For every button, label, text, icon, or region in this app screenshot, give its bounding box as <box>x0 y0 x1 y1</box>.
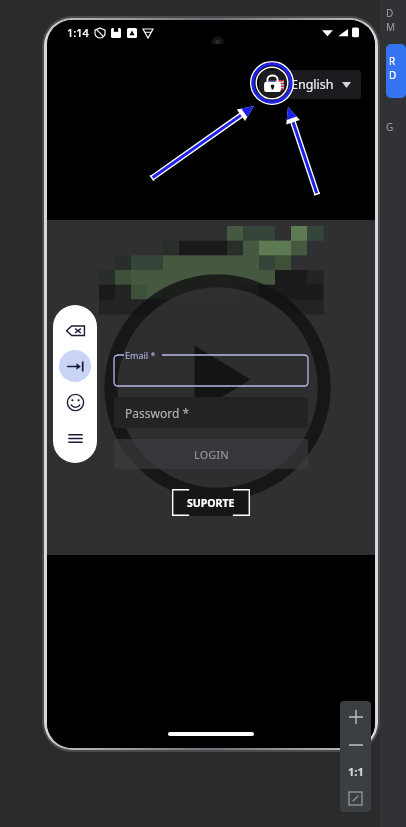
staticText: D <box>386 6 394 20</box>
button[interactable]: Zoom in <box>340 701 371 732</box>
staticText: 1:14 <box>67 25 89 40</box>
staticText: English <box>291 76 334 93</box>
button[interactable]: Password * <box>114 397 308 428</box>
button[interactable]: Fit to screen <box>340 784 371 812</box>
staticText: D <box>389 68 397 82</box>
button[interactable]: Emoji <box>59 386 91 418</box>
button[interactable]: Unlock <box>255 66 289 100</box>
staticText: 1:1 <box>348 764 364 779</box>
staticText: G <box>386 120 394 134</box>
staticText: Email * <box>125 349 156 361</box>
staticText: LOGIN <box>194 447 229 462</box>
button[interactable]: 1:1 <box>340 758 371 784</box>
button[interactable] <box>114 355 308 386</box>
button[interactable]: Menu <box>59 422 91 454</box>
staticText: Password * <box>125 405 190 421</box>
button[interactable]: Zoom out <box>340 732 371 758</box>
button[interactable]: SUPORTE <box>172 489 250 516</box>
button[interactable]: Next field <box>59 350 91 382</box>
button[interactable]: R <box>386 44 406 98</box>
button[interactable]: Backspace <box>59 314 91 346</box>
button[interactable]: English <box>259 70 361 99</box>
staticText: M <box>386 20 396 34</box>
button[interactable]: LOGIN <box>114 439 308 469</box>
staticText: SUPORTE <box>187 496 235 510</box>
staticText: R <box>389 54 396 68</box>
